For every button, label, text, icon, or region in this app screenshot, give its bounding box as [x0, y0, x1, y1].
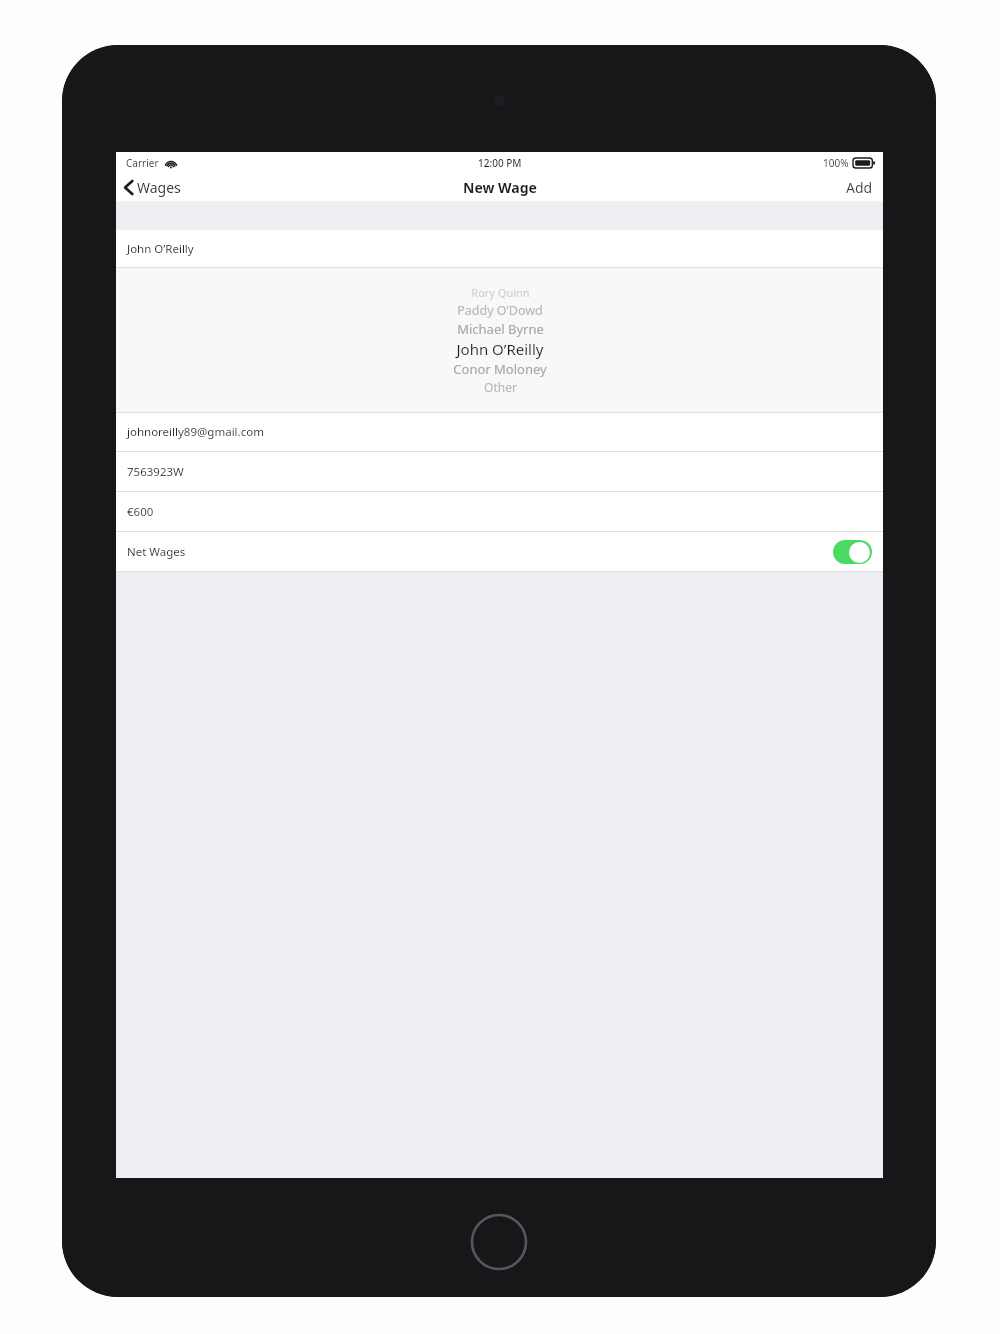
- button[interactable]: Wages: [116, 174, 189, 201]
- button[interactable]: John O’Reilly: [116, 230, 883, 267]
- staticText: 100%: [823, 156, 849, 170]
- button[interactable]: Add: [836, 174, 883, 201]
- staticText: Other: [484, 379, 517, 395]
- button[interactable]: johnoreilly89@gmail.com: [116, 413, 883, 451]
- button[interactable]: Rory Quinn: [116, 268, 883, 412]
- staticText: 12:00 PM: [478, 156, 522, 170]
- staticText: John O’Reilly: [127, 241, 194, 257]
- button[interactable]: Net Wages: [116, 532, 883, 571]
- staticText: €600: [127, 504, 154, 520]
- staticText: Add: [846, 178, 873, 197]
- staticText: Carrier: [126, 156, 159, 170]
- staticText: New Wage: [463, 178, 537, 197]
- staticText: Michael Byrne: [457, 320, 544, 338]
- staticText: Conor Moloney: [453, 360, 547, 378]
- staticText: 7563923W: [127, 464, 184, 480]
- staticText: Paddy O’Dowd: [457, 302, 543, 319]
- button[interactable]: 7563923W: [116, 452, 883, 491]
- staticText: Wages: [137, 178, 181, 197]
- staticText: johnoreilly89@gmail.com: [127, 424, 264, 440]
- staticText: Net Wages: [127, 544, 186, 560]
- staticText: John O’Reilly: [456, 339, 544, 359]
- staticText: Rory Quinn: [471, 285, 530, 300]
- button[interactable]: €600: [116, 492, 883, 531]
- button[interactable]: Net Wages toggle: [833, 540, 872, 564]
